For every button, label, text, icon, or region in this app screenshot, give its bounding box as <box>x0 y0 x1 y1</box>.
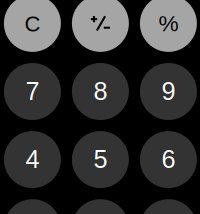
staticText: C <box>24 11 40 36</box>
button[interactable]: 7 <box>4 63 61 120</box>
button[interactable]: 1 <box>4 199 61 214</box>
button[interactable]: 2 <box>72 199 129 214</box>
button[interactable]: Percent <box>140 0 197 52</box>
staticText: 8 <box>93 77 107 105</box>
button[interactable]: 6 <box>140 131 197 188</box>
staticText: % <box>158 11 178 36</box>
button[interactable]: 3 <box>140 199 197 214</box>
staticText: 4 <box>25 145 39 173</box>
button[interactable]: Plus minus <box>72 0 129 52</box>
button[interactable]: 8 <box>72 63 129 120</box>
button[interactable]: 4 <box>4 131 61 188</box>
button[interactable]: Clear <box>4 0 61 52</box>
staticText: 5 <box>93 145 107 173</box>
staticText: 9 <box>161 77 175 105</box>
button[interactable]: 9 <box>140 63 197 120</box>
staticText: 7 <box>25 77 39 105</box>
staticText: 6 <box>161 145 175 173</box>
button[interactable]: 5 <box>72 131 129 188</box>
